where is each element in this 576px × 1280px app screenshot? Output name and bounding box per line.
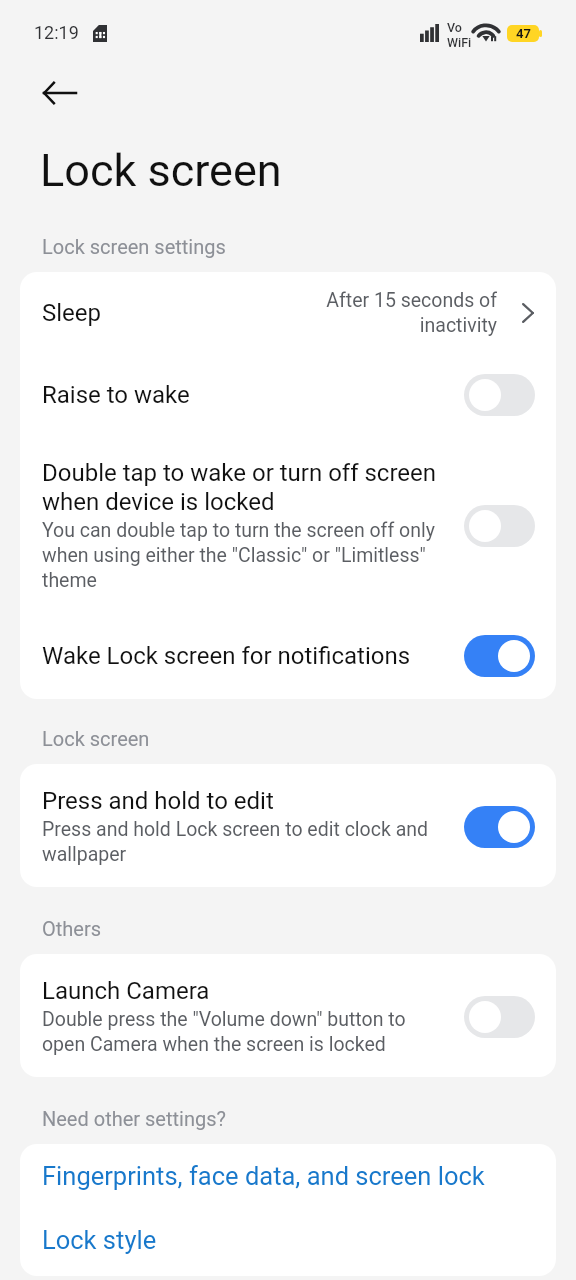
staticText: Press and hold Lock screen to edit clock… <box>42 818 450 866</box>
staticText: Lock style <box>42 1225 157 1255</box>
button[interactable]: Launch Camera <box>20 954 556 1077</box>
button[interactable]: Back <box>30 64 88 122</box>
button[interactable]: Sleep <box>20 272 556 354</box>
staticText: You can double tap to turn the screen of… <box>42 519 450 592</box>
staticText: After 15 seconds of inactivity <box>319 289 497 337</box>
staticText: Vo <box>447 20 462 35</box>
staticText: Need other settings? <box>42 1107 226 1130</box>
staticText: Fingerprints, face data, and screen lock <box>42 1161 485 1191</box>
staticText: Press and hold to edit <box>42 787 274 815</box>
staticText: Lock screen <box>42 727 150 750</box>
staticText: Wake Lock screen for notifications <box>42 642 450 670</box>
button[interactable]: Raise to wake <box>20 354 556 436</box>
staticText: Sleep <box>42 299 102 327</box>
staticText: 47 <box>516 26 531 41</box>
button[interactable]: Wake Lock screen for notifications <box>464 635 535 677</box>
staticText: Raise to wake <box>42 381 450 409</box>
button[interactable]: Launch Camera <box>464 996 535 1038</box>
button[interactable]: Fingerprints, face data, and screen lock <box>20 1144 556 1208</box>
staticText: Double press the "Volume down" button to… <box>42 1008 450 1056</box>
button[interactable]: Press and hold to edit <box>464 806 535 848</box>
staticText: Lock screen settings <box>42 235 226 258</box>
button[interactable]: Lock style <box>20 1208 556 1272</box>
staticText: Lock screen <box>40 144 282 197</box>
staticText: Launch Camera <box>42 977 210 1005</box>
staticText: Others <box>42 917 102 940</box>
button[interactable]: Double tap to wake or turn off screen wh… <box>20 436 556 613</box>
staticText: 12:19 <box>34 22 79 43</box>
button[interactable]: Double tap to wake or turn off screen wh… <box>464 505 535 547</box>
button[interactable]: Raise to wake <box>464 374 535 416</box>
button[interactable]: Press and hold to edit <box>20 764 556 887</box>
button[interactable]: Wake Lock screen for notifications <box>20 613 556 699</box>
staticText: WiFi <box>447 35 472 50</box>
staticText: Double tap to wake or turn off screen wh… <box>42 459 450 516</box>
